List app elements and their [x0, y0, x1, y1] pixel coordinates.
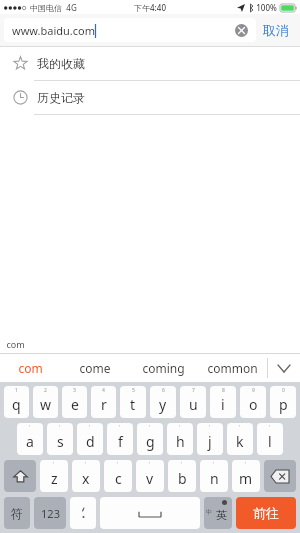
button[interactable]: com	[0, 354, 60, 382]
staticText: i	[221, 395, 225, 414]
staticText: o	[249, 395, 258, 414]
button[interactable]: 历史记录	[0, 81, 300, 114]
button[interactable]: come	[60, 354, 129, 382]
button[interactable]: '	[232, 460, 260, 492]
staticText: 6	[162, 387, 165, 394]
staticText: 1	[15, 387, 18, 394]
button[interactable]: www.baidu.com	[4, 18, 256, 42]
button[interactable]: '	[227, 423, 253, 455]
button[interactable]: 前往	[236, 497, 296, 529]
staticText: 8	[222, 387, 225, 394]
button[interactable]: 9	[240, 386, 266, 418]
staticText: '	[213, 461, 215, 468]
button[interactable]: '	[72, 460, 100, 492]
staticText: '	[245, 461, 247, 468]
staticText: r	[101, 395, 107, 414]
staticText: '	[269, 424, 271, 431]
staticText: x	[82, 469, 90, 488]
staticText: w	[40, 395, 52, 414]
button[interactable]: '	[137, 423, 163, 455]
staticText: 中	[206, 508, 212, 516]
staticText: f	[118, 432, 123, 451]
staticText: 3	[73, 387, 76, 394]
button[interactable]: 0	[270, 386, 296, 418]
button[interactable]: 2	[33, 386, 58, 418]
button[interactable]: '	[197, 423, 223, 455]
staticText: j	[208, 432, 212, 451]
staticText: '	[181, 461, 183, 468]
button[interactable]: 123	[34, 497, 66, 529]
staticText: a	[26, 432, 34, 451]
staticText: '	[119, 424, 121, 431]
staticText: '	[149, 461, 151, 468]
staticText: common	[207, 360, 258, 376]
button[interactable]: '	[77, 423, 103, 455]
staticText: v	[146, 469, 154, 488]
staticText: '	[89, 424, 91, 431]
button[interactable]: '	[40, 460, 68, 492]
button[interactable]: '	[136, 460, 164, 492]
staticText: c	[115, 469, 122, 488]
button[interactable]: coming	[129, 354, 198, 382]
staticText: 我的收藏	[37, 56, 85, 71]
button[interactable]: 5	[120, 386, 146, 418]
button[interactable]: 8	[210, 386, 236, 418]
button[interactable]: '	[47, 423, 73, 455]
button[interactable]: '	[168, 460, 196, 492]
staticText: h	[176, 432, 185, 451]
staticText: 2	[44, 387, 47, 394]
staticText: 7	[192, 387, 195, 394]
staticText: '	[117, 461, 119, 468]
button[interactable]: 我的收藏	[0, 47, 300, 80]
staticText: '	[209, 424, 211, 431]
staticText: 前往	[253, 505, 279, 521]
staticText: z	[51, 469, 58, 488]
staticText: 123	[41, 506, 60, 521]
staticText: 中国电信	[30, 3, 62, 13]
button[interactable]: Expand candidates	[268, 354, 300, 382]
button[interactable]: Clear text	[235, 24, 248, 37]
staticText: 5	[132, 387, 135, 394]
staticText: '	[149, 424, 151, 431]
button[interactable]: '	[167, 423, 193, 455]
button[interactable]: Punctuation	[70, 497, 96, 529]
staticText: 符	[11, 506, 23, 521]
staticText: '	[239, 424, 241, 431]
staticText: 下午4:40	[134, 2, 166, 13]
button[interactable]: 取消	[256, 18, 296, 42]
staticText: '	[59, 424, 61, 431]
button[interactable]: Switch Chinese English	[204, 497, 232, 529]
button[interactable]: common	[198, 354, 267, 382]
staticText: '	[179, 424, 181, 431]
staticText: 9	[252, 387, 255, 394]
staticText: '	[85, 461, 87, 468]
button[interactable]: Shift	[4, 460, 36, 492]
staticText: y	[159, 395, 167, 414]
staticText: t	[130, 395, 136, 414]
button[interactable]: 4	[91, 386, 116, 418]
staticText: 0	[282, 387, 285, 394]
button[interactable]: 1	[4, 386, 29, 418]
staticText: 100%	[256, 2, 277, 13]
button[interactable]: Space	[100, 497, 200, 529]
button[interactable]: 6	[150, 386, 176, 418]
staticText: 英	[216, 508, 227, 522]
staticText: www.baidu.com	[12, 23, 95, 38]
button[interactable]: 7	[180, 386, 206, 418]
button[interactable]: '	[104, 460, 132, 492]
button[interactable]: 3	[62, 386, 87, 418]
staticText: b	[178, 469, 187, 488]
button[interactable]: '	[200, 460, 228, 492]
button[interactable]: '	[17, 423, 43, 455]
button[interactable]: 符	[4, 497, 30, 529]
button[interactable]: '	[107, 423, 133, 455]
staticText: k	[236, 432, 244, 451]
staticText: '	[29, 424, 31, 431]
staticText: 4G	[66, 2, 77, 13]
button[interactable]: Backspace	[264, 460, 296, 492]
staticText: d	[86, 432, 95, 451]
staticText: l	[268, 432, 272, 451]
button[interactable]: '	[257, 423, 283, 455]
staticText: s	[57, 432, 64, 451]
staticText: com	[18, 360, 43, 376]
